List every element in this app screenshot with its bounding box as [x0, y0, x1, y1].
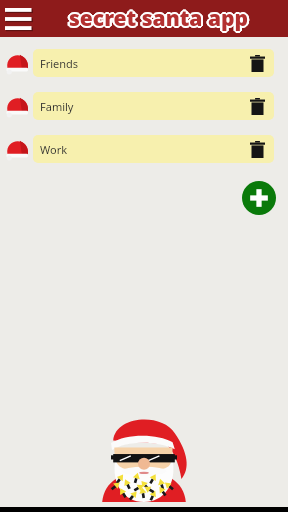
button[interactable]: Delete Work: [245, 137, 269, 161]
staticText: secret santa app: [70, 5, 249, 34]
button[interactable]: Family: [33, 92, 274, 120]
staticText: secret santa app: [68, 3, 247, 32]
button[interactable]: Group icon: [4, 93, 30, 119]
staticText: secret santa app: [70, 3, 249, 32]
staticText: secret santa app: [69, 6, 248, 35]
staticText: secret santa app: [67, 4, 246, 33]
staticText: secret santa app: [68, 5, 247, 34]
staticText: secret santa app: [71, 4, 250, 33]
staticText: Friends: [40, 56, 245, 71]
button[interactable]: Add group: [242, 181, 276, 215]
staticText: secret santa app: [69, 2, 248, 31]
button[interactable]: Delete Friends: [245, 51, 269, 75]
button[interactable]: Group icon: [4, 136, 30, 162]
staticText: Family: [40, 99, 245, 114]
button[interactable]: Menu: [3, 3, 35, 35]
staticText: secret santa app: [69, 4, 248, 33]
button[interactable]: Friends: [33, 49, 274, 77]
staticText: Work: [40, 142, 245, 157]
button[interactable]: Work: [33, 135, 274, 163]
button[interactable]: Group icon: [4, 50, 30, 76]
staticText: secret santa app: [71, 4, 250, 33]
staticText: secret santa app: [67, 4, 246, 33]
button[interactable]: Delete Family: [245, 94, 269, 118]
